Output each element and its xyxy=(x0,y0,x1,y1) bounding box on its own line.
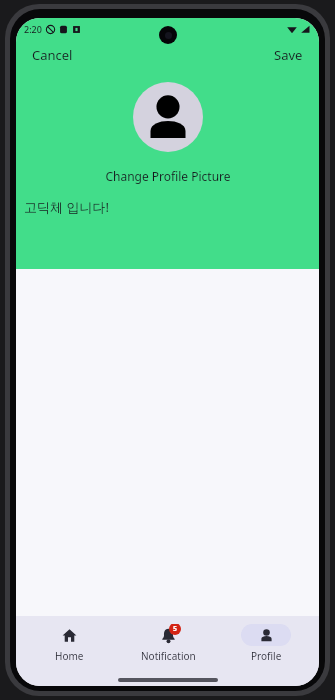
button[interactable]: Save xyxy=(264,42,319,68)
button[interactable]: Cancel xyxy=(16,42,83,68)
button[interactable]: 5 xyxy=(123,622,213,665)
button[interactable]: Home xyxy=(24,622,114,665)
button[interactable]: Change profile picture xyxy=(133,82,203,152)
button[interactable]: Profile xyxy=(221,622,311,665)
staticText: Profile xyxy=(251,649,282,663)
staticText: Notification xyxy=(141,649,196,663)
staticText: Cancel xyxy=(32,46,73,64)
staticText: 고딕체 입니다! xyxy=(24,198,109,216)
staticText: Change Profile Picture xyxy=(105,168,231,184)
button[interactable]: Change Profile Picture xyxy=(101,164,235,188)
staticText: Home xyxy=(55,649,84,663)
staticText: Save xyxy=(274,46,303,64)
staticText: 5 xyxy=(173,624,178,634)
staticText: 2:20 xyxy=(24,23,42,35)
